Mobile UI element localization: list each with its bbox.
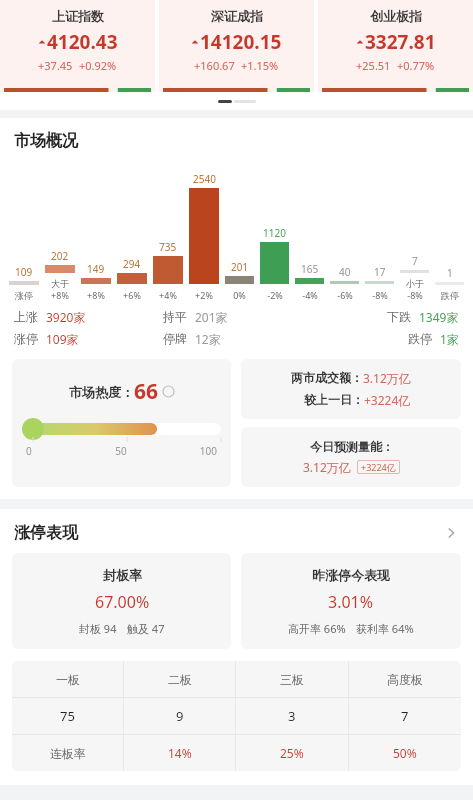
staticText: 201 (231, 260, 249, 274)
staticText: 14120.15 (200, 29, 282, 55)
button[interactable]: 昨涨停今表现 (241, 553, 461, 649)
staticText: +3224亿 (361, 461, 396, 473)
button[interactable]: 上证指数 (0, 0, 155, 92)
staticText: 201家 (195, 309, 228, 325)
staticText: +4% (159, 289, 177, 301)
staticText: 50 (89, 444, 153, 458)
staticText: 涨停 (15, 290, 33, 301)
staticText: 高开率 66% (288, 621, 346, 636)
staticText: 9 (176, 707, 184, 725)
staticText: +2% (195, 289, 213, 301)
staticText: 上涨 (14, 309, 38, 324)
staticText: 7 (412, 254, 418, 268)
button[interactable]: 封板率 (12, 553, 231, 649)
staticText: 50% (393, 745, 417, 761)
staticText: -2% (267, 289, 283, 301)
staticText: 4120.43 (47, 29, 118, 55)
staticText: 0% (233, 289, 246, 301)
staticText: 202 (51, 249, 69, 263)
staticText: 三板 (280, 672, 304, 687)
staticText: 3.12万亿 (363, 370, 411, 386)
staticText: 1349家 (419, 309, 459, 325)
staticText: 两市成交额： (291, 370, 363, 385)
staticText: -6% (337, 289, 353, 301)
button[interactable]: 创业板指 (318, 0, 473, 92)
staticText: 12家 (195, 331, 221, 347)
staticText: 17 (374, 265, 386, 279)
staticText: +8% (51, 289, 69, 301)
staticText: -4% (302, 289, 318, 301)
staticText: 100 (153, 444, 217, 458)
staticText: 3.01% (328, 591, 374, 613)
staticText: 75 (60, 707, 75, 725)
staticText: +0.92% (79, 58, 117, 73)
staticText: +37.45 (38, 58, 73, 73)
staticText: 14% (168, 745, 192, 761)
staticText: 触及 47 (127, 621, 165, 636)
staticText: 昨涨停今表现 (312, 567, 390, 583)
staticText: 40 (339, 265, 351, 279)
staticText: 跌停 (408, 331, 432, 346)
staticText: 市场概况 (14, 131, 78, 151)
staticText: 停牌 (163, 331, 187, 346)
staticText: 1 (447, 266, 453, 280)
staticText: 66 (134, 377, 159, 406)
staticText: 涨停表现 (14, 523, 78, 543)
staticText: 封板 94 (79, 621, 117, 636)
staticText: 下跌 (387, 309, 411, 324)
staticText: 二板 (168, 672, 192, 687)
staticText: 1家 (440, 331, 459, 347)
staticText: 封板率 (103, 567, 142, 583)
button[interactable]: 今日预测量能： (241, 427, 461, 487)
staticText: +25.51 (356, 58, 391, 73)
staticText: 7 (401, 707, 409, 725)
staticText: +3224亿 (364, 392, 411, 408)
button[interactable]: 深证成指 (159, 0, 314, 92)
staticText: 3920家 (46, 309, 86, 325)
staticText: 3327.81 (365, 29, 436, 55)
staticText: -8% (372, 289, 388, 301)
staticText: 小于 (406, 278, 424, 289)
staticText: 一板 (56, 672, 80, 687)
staticText: 1120 (263, 226, 286, 240)
staticText: 高度板 (387, 672, 423, 687)
staticText: 持平 (163, 309, 187, 324)
staticText: 深证成指 (211, 8, 263, 24)
staticText: 25% (280, 745, 304, 761)
staticText: +8% (87, 289, 105, 301)
staticText: 0 (26, 444, 89, 458)
button[interactable]: 两市成交额： (241, 359, 461, 419)
staticText: 294 (123, 257, 141, 271)
other: More (443, 525, 459, 541)
staticText: 3.12万亿 (303, 459, 351, 475)
staticText: 大于 (51, 278, 69, 289)
staticText: 3 (288, 707, 296, 725)
staticText: 今日预测量能： (310, 439, 394, 454)
staticText: +1.15% (241, 58, 279, 73)
staticText: 创业板指 (370, 8, 422, 24)
staticText: 涨停 (14, 331, 38, 346)
staticText: -8% (407, 289, 423, 301)
staticText: 市场热度： (69, 384, 134, 400)
staticText: 上证指数 (52, 8, 104, 24)
staticText: 67.00% (95, 591, 150, 613)
staticText: +6% (123, 289, 141, 301)
staticText: 109 (15, 265, 33, 279)
staticText: +0.77% (397, 58, 435, 73)
staticText: 735 (159, 240, 177, 254)
button[interactable]: 市场热度： (12, 359, 231, 487)
button[interactable]: 涨停表现 (0, 509, 473, 553)
staticText: 跌停 (441, 290, 459, 301)
staticText: 获利率 64% (356, 621, 414, 636)
staticText: 165 (301, 262, 319, 276)
staticText: 149 (87, 262, 105, 276)
staticText: 连板率 (50, 746, 86, 761)
staticText: 2540 (193, 172, 216, 186)
staticText: +160.67 (194, 58, 235, 73)
staticText: 较上一日： (304, 392, 364, 407)
staticText: 109家 (46, 331, 79, 347)
